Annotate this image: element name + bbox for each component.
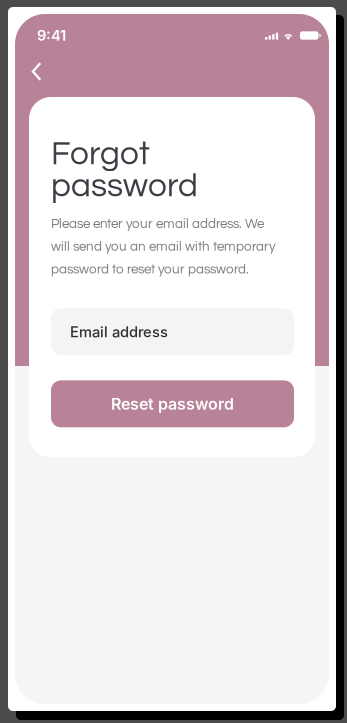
- staticText: Forgot: [51, 137, 150, 171]
- button[interactable]: Email address: [51, 308, 294, 355]
- button[interactable]: Reset password: [51, 380, 294, 427]
- staticText: 9:41: [37, 27, 66, 44]
- staticText: Email address: [70, 323, 168, 341]
- button[interactable]: Back: [18, 54, 56, 88]
- staticText: Reset password: [111, 394, 234, 414]
- staticText: password: [51, 169, 198, 203]
- staticText: Please enter your email address. We will…: [51, 217, 276, 276]
